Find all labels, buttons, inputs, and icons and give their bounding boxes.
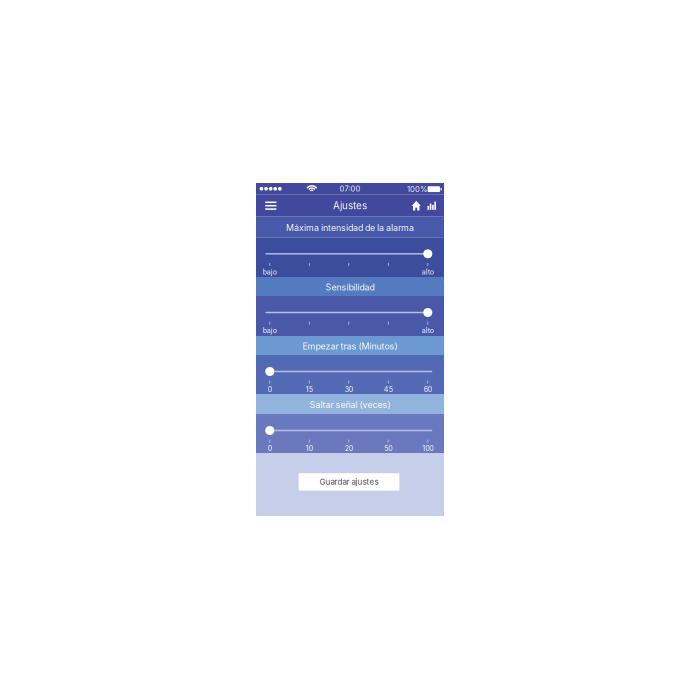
button[interactable]: Statistics bbox=[424, 195, 439, 217]
staticText: 0 bbox=[268, 444, 272, 453]
staticText: 10 bbox=[306, 444, 313, 453]
staticText: 07:00 bbox=[339, 184, 360, 193]
staticText: Máxima intensidad de la alarma bbox=[286, 222, 414, 233]
staticText: 45 bbox=[384, 385, 393, 394]
staticText: 60 bbox=[424, 385, 432, 394]
staticText: bajo bbox=[263, 268, 277, 276]
staticText: 100% bbox=[407, 185, 427, 194]
staticText: Sensibilidad bbox=[325, 282, 374, 292]
staticText: Guardar ajustes bbox=[319, 477, 378, 487]
staticText: Ajustes bbox=[333, 200, 367, 212]
staticText: Saltar señal (veces) bbox=[309, 399, 390, 410]
staticText: 100 bbox=[422, 444, 433, 453]
staticText: alto bbox=[422, 326, 434, 335]
staticText: 15 bbox=[306, 385, 313, 394]
button[interactable]: Guardar ajustes bbox=[299, 473, 399, 491]
staticText: Empezar tras (Minutos) bbox=[302, 341, 397, 351]
staticText: bajo bbox=[263, 326, 277, 335]
staticText: 50 bbox=[384, 444, 392, 453]
button[interactable]: Home bbox=[408, 195, 424, 217]
button[interactable]: Menu bbox=[260, 195, 282, 217]
staticText: alto bbox=[422, 268, 434, 276]
staticText: 20 bbox=[345, 444, 353, 453]
staticText: 30 bbox=[345, 385, 353, 394]
staticText: 0 bbox=[268, 385, 272, 394]
